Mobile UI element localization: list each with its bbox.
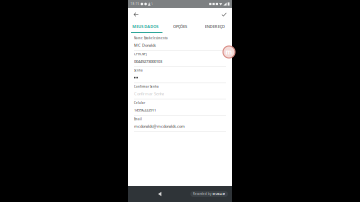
staticText: Nome Estabelecimento	[134, 36, 168, 40]
staticText: Senha	[134, 69, 143, 72]
staticText: MEUS DADOS	[132, 24, 158, 29]
staticText: MC Donalds	[134, 42, 156, 48]
staticText: Email	[134, 117, 142, 121]
staticText: MOBIZEN	[212, 192, 225, 196]
staticText: mcdonalds@mcdonalds.com	[134, 123, 185, 129]
staticText: CPF/CNPJ	[134, 52, 147, 56]
button[interactable]: Save	[221, 11, 227, 17]
staticText: ENDEREÇO	[205, 24, 225, 29]
staticText: 00449273000103	[134, 59, 162, 64]
button[interactable]: Back	[133, 11, 139, 17]
staticText: Confirmar Senha	[134, 91, 164, 96]
staticText: m	[225, 48, 232, 56]
staticText: 18:15	[130, 2, 139, 6]
button[interactable]: OPÇÕES	[163, 21, 197, 33]
staticText: 14996333911	[134, 107, 156, 113]
button[interactable]: MEUS DADOS	[128, 21, 163, 33]
button[interactable]: ENDEREÇO	[197, 21, 232, 33]
staticText: Confirmar Senha	[134, 85, 159, 88]
staticText: OPÇÕES	[173, 24, 187, 29]
staticText: Celular	[134, 101, 145, 105]
staticText: Recorded by	[193, 192, 211, 196]
button[interactable]: Back	[157, 191, 163, 197]
